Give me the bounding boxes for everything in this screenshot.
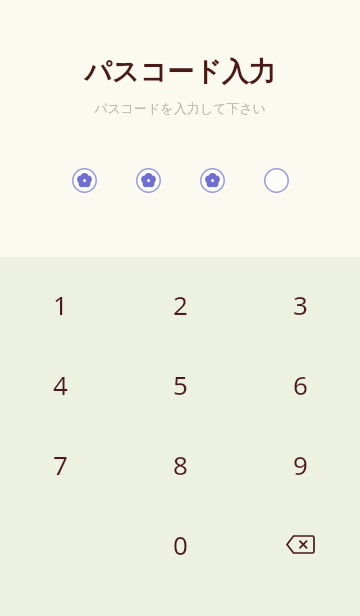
button[interactable]: 5 (120, 344, 240, 424)
staticText: 5 (173, 367, 188, 402)
button[interactable]: 1 (0, 264, 120, 344)
staticText: 2 (173, 287, 188, 322)
staticText: 7 (53, 447, 68, 482)
button[interactable]: 7 (0, 424, 120, 504)
staticText: 6 (293, 367, 308, 402)
button[interactable]: 6 (240, 344, 360, 424)
staticText: パスコードを入力して下さい (94, 100, 266, 116)
staticText: 4 (53, 367, 68, 402)
other: Delete (280, 524, 320, 564)
button[interactable]: 2 (120, 264, 240, 344)
button[interactable]: 3 (240, 264, 360, 344)
button[interactable]: 4 (0, 344, 120, 424)
staticText: 3 (293, 287, 308, 322)
staticText: 8 (173, 447, 188, 482)
button[interactable]: 9 (240, 424, 360, 504)
button[interactable]: 0 (120, 504, 240, 584)
staticText: 0 (173, 527, 188, 562)
staticText: パスコード入力 (84, 55, 276, 89)
staticText: 1 (53, 287, 68, 322)
staticText: 9 (293, 447, 308, 482)
button[interactable]: 8 (120, 424, 240, 504)
button[interactable]: Delete (240, 504, 360, 584)
